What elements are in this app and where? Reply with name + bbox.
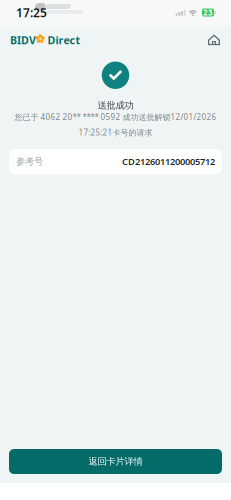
button[interactable]: Home — [202, 29, 226, 51]
staticText: 参考号 — [16, 156, 43, 167]
staticText: Direct — [47, 33, 80, 47]
staticText: 17:25:21卡号的请求 — [78, 127, 152, 138]
staticText: 您已于 4062 20** **** 0592 成功送批解锁12/01/2026 — [14, 112, 216, 122]
button[interactable]: 返回卡片详情 — [9, 449, 222, 474]
staticText: 23 — [203, 7, 213, 18]
staticText: BIDV — [10, 33, 36, 47]
staticText: 返回卡片详情 — [88, 456, 142, 467]
staticText: 送批成功 — [97, 100, 133, 111]
staticText: CD2126011200005712 — [122, 155, 215, 168]
staticText: 17:25 — [16, 4, 47, 20]
